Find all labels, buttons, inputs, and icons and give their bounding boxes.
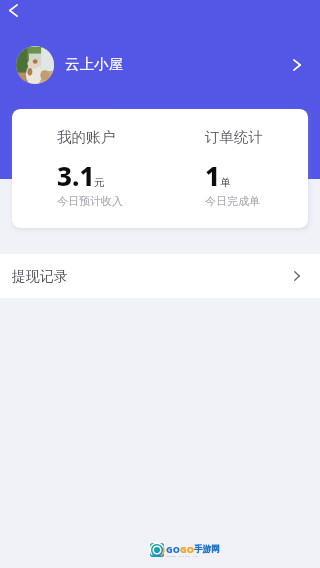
button[interactable]: 云上小屋 xyxy=(0,36,320,94)
staticText: 今日完成单 xyxy=(205,194,260,208)
staticText: 提现记录 xyxy=(12,268,68,286)
button[interactable]: Back xyxy=(1,0,25,22)
staticText: 今日预计收入 xyxy=(57,194,123,208)
staticText: 订单统计 xyxy=(205,128,263,146)
staticText: 单 xyxy=(220,176,231,189)
staticText: GO xyxy=(166,543,180,555)
staticText: 我的账户 xyxy=(57,128,115,146)
staticText: 云上小屋 xyxy=(65,55,123,73)
staticText: GO xyxy=(180,543,194,555)
staticText: 元 xyxy=(94,176,105,189)
staticText: 手游网 xyxy=(194,544,220,555)
staticText: w w w . g o g o . c n xyxy=(166,554,198,557)
staticText: 1 xyxy=(205,158,221,193)
button[interactable]: 提现记录 xyxy=(0,254,320,298)
staticText: 3.1 xyxy=(57,158,95,193)
